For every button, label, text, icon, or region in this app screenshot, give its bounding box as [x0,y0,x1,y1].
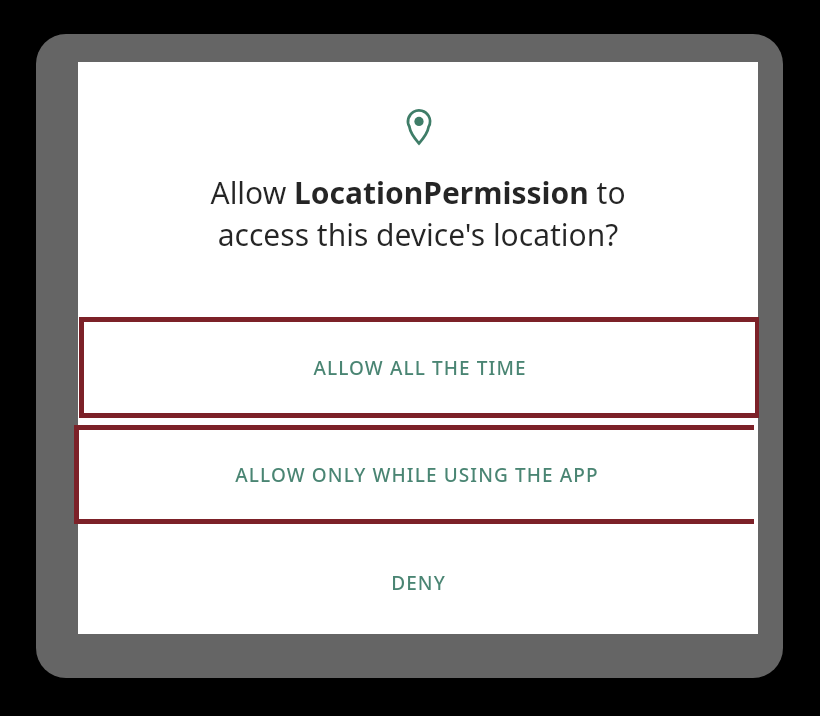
button[interactable]: ALLOW ALL THE TIME [79,317,759,418]
button[interactable]: ALLOW ONLY WHILE USING THE APP [74,425,754,524]
staticText: ALLOW ALL THE TIME [313,355,527,381]
other: Location [403,109,435,145]
button[interactable]: DENY [78,532,758,634]
staticText: ALLOW ONLY WHILE USING THE APP [235,462,599,488]
staticText: Allow LocationPermission to access this … [102,172,734,255]
staticText: DENY [391,570,446,596]
